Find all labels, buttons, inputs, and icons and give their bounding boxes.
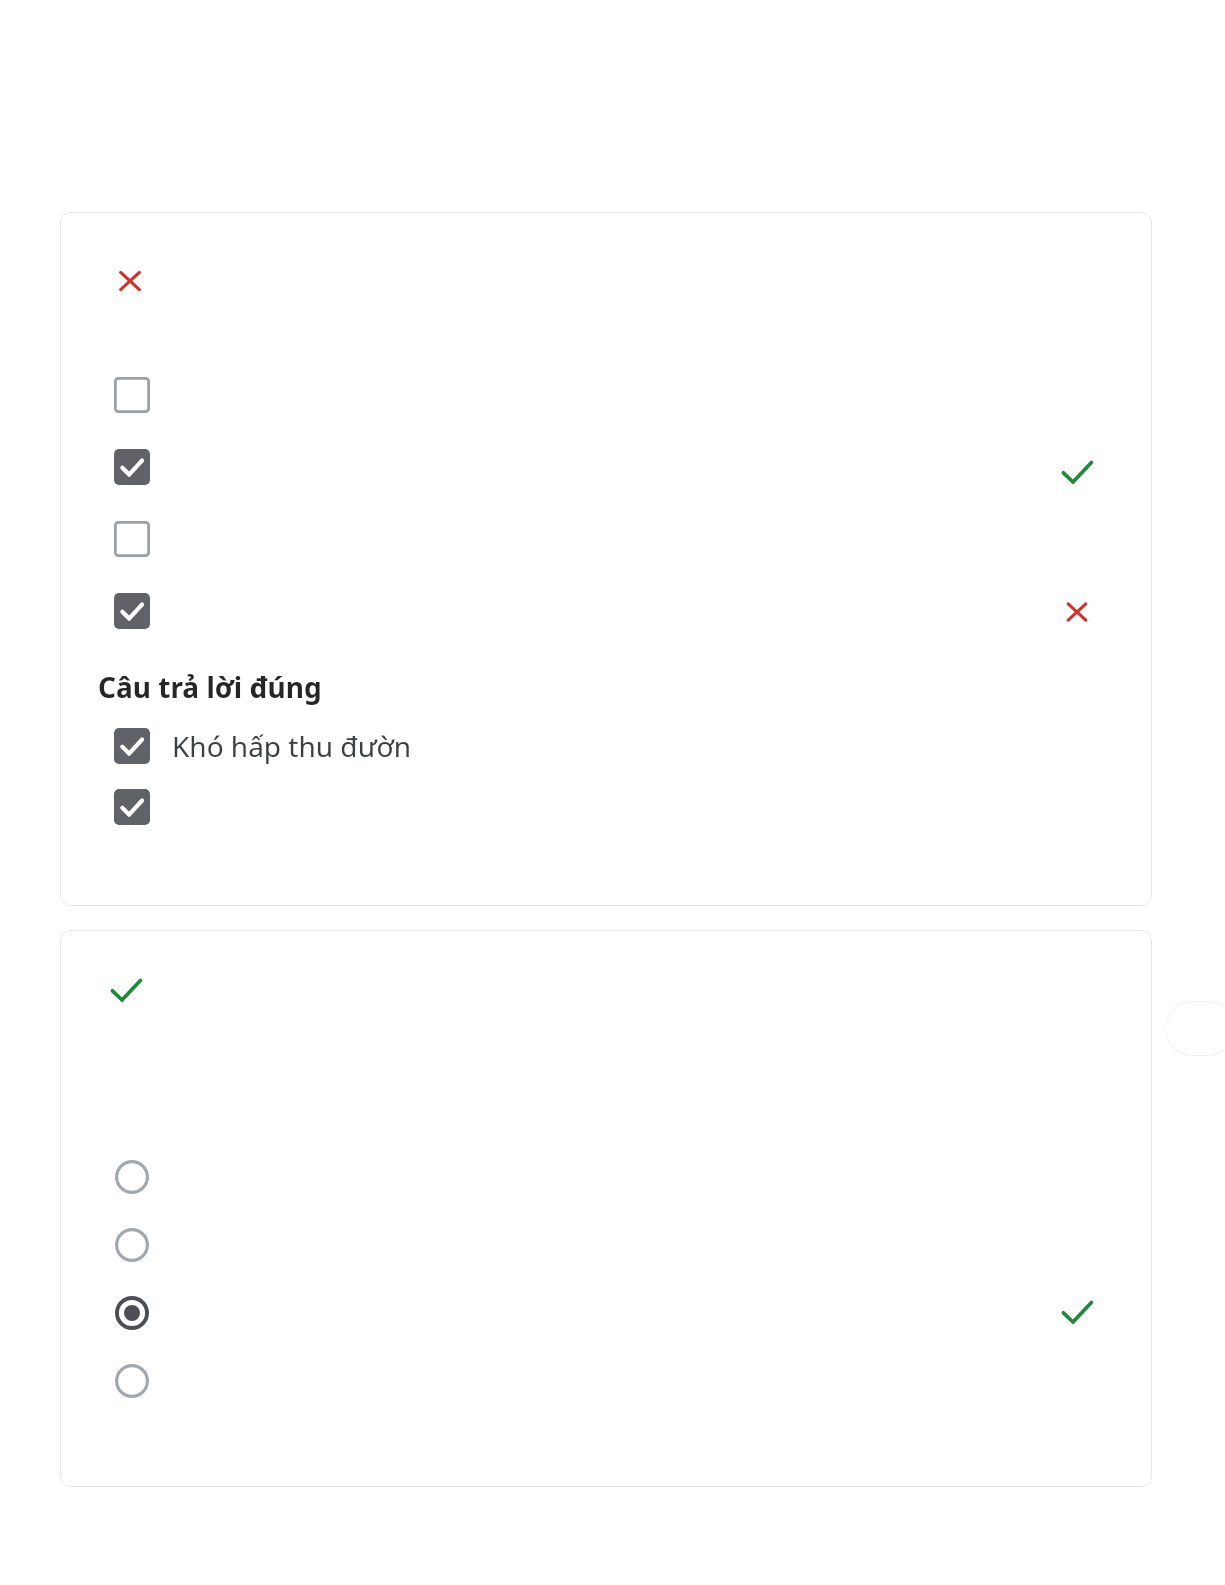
- button[interactable]: [60, 1352, 1152, 1420]
- button[interactable]: [60, 1216, 1152, 1284]
- button[interactable]: [60, 363, 1152, 435]
- button[interactable]: [60, 777, 1152, 839]
- staticText: Khó hấp thu đườn: [172, 727, 412, 765]
- button[interactable]: [60, 507, 1152, 579]
- button[interactable]: [60, 579, 1152, 651]
- button[interactable]: [60, 435, 1152, 507]
- button[interactable]: Correct: [106, 970, 146, 1010]
- button[interactable]: [60, 1148, 1152, 1216]
- button[interactable]: Incorrect: [112, 263, 148, 299]
- button[interactable]: [60, 1284, 1152, 1352]
- staticText: Câu trả lời đúng: [98, 668, 322, 706]
- button[interactable]: Khó hấp thu đườn: [60, 715, 1152, 777]
